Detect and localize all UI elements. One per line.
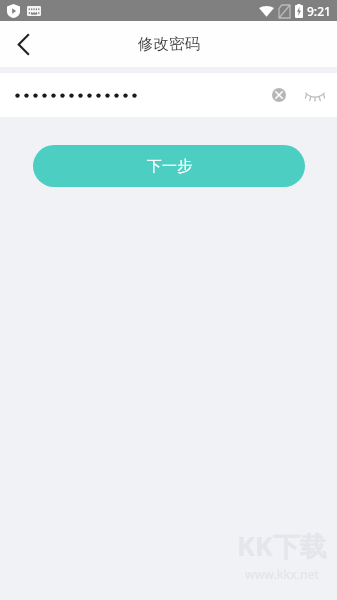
staticText: www.kkx.net bbox=[245, 566, 320, 582]
button[interactable]: Back bbox=[0, 21, 46, 67]
button[interactable]: Show password bbox=[300, 80, 330, 110]
staticText: 9:21 bbox=[307, 3, 331, 19]
button[interactable]: Clear bbox=[264, 80, 294, 110]
staticText: KK下载 bbox=[237, 527, 327, 564]
button[interactable]: 下一步 bbox=[33, 145, 305, 187]
staticText: 修改密码 bbox=[138, 34, 200, 54]
staticText: 下一步 bbox=[147, 157, 192, 176]
